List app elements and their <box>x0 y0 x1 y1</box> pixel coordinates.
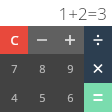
staticText: 7 <box>11 61 18 76</box>
button[interactable]: Multiply <box>84 54 112 83</box>
button[interactable]: Divide <box>84 26 112 54</box>
button[interactable]: Seven <box>0 54 28 83</box>
button[interactable]: Clear <box>0 26 28 54</box>
staticText: 5 <box>39 90 46 105</box>
staticText: 9 <box>67 61 74 76</box>
button[interactable]: Minus <box>28 26 56 54</box>
staticText: 1+2=3 <box>58 2 107 25</box>
button[interactable]: Nine <box>56 54 84 83</box>
staticText: C <box>10 31 19 49</box>
staticText: 8 <box>39 61 46 76</box>
button[interactable]: Eight <box>28 54 56 83</box>
staticText: 6 <box>67 90 74 105</box>
staticText: 4 <box>11 90 18 105</box>
button[interactable]: Five <box>28 83 56 112</box>
button[interactable]: Six <box>56 83 84 112</box>
button[interactable]: Equals <box>84 83 112 112</box>
button[interactable]: Plus <box>56 26 84 54</box>
button[interactable]: Four <box>0 83 28 112</box>
